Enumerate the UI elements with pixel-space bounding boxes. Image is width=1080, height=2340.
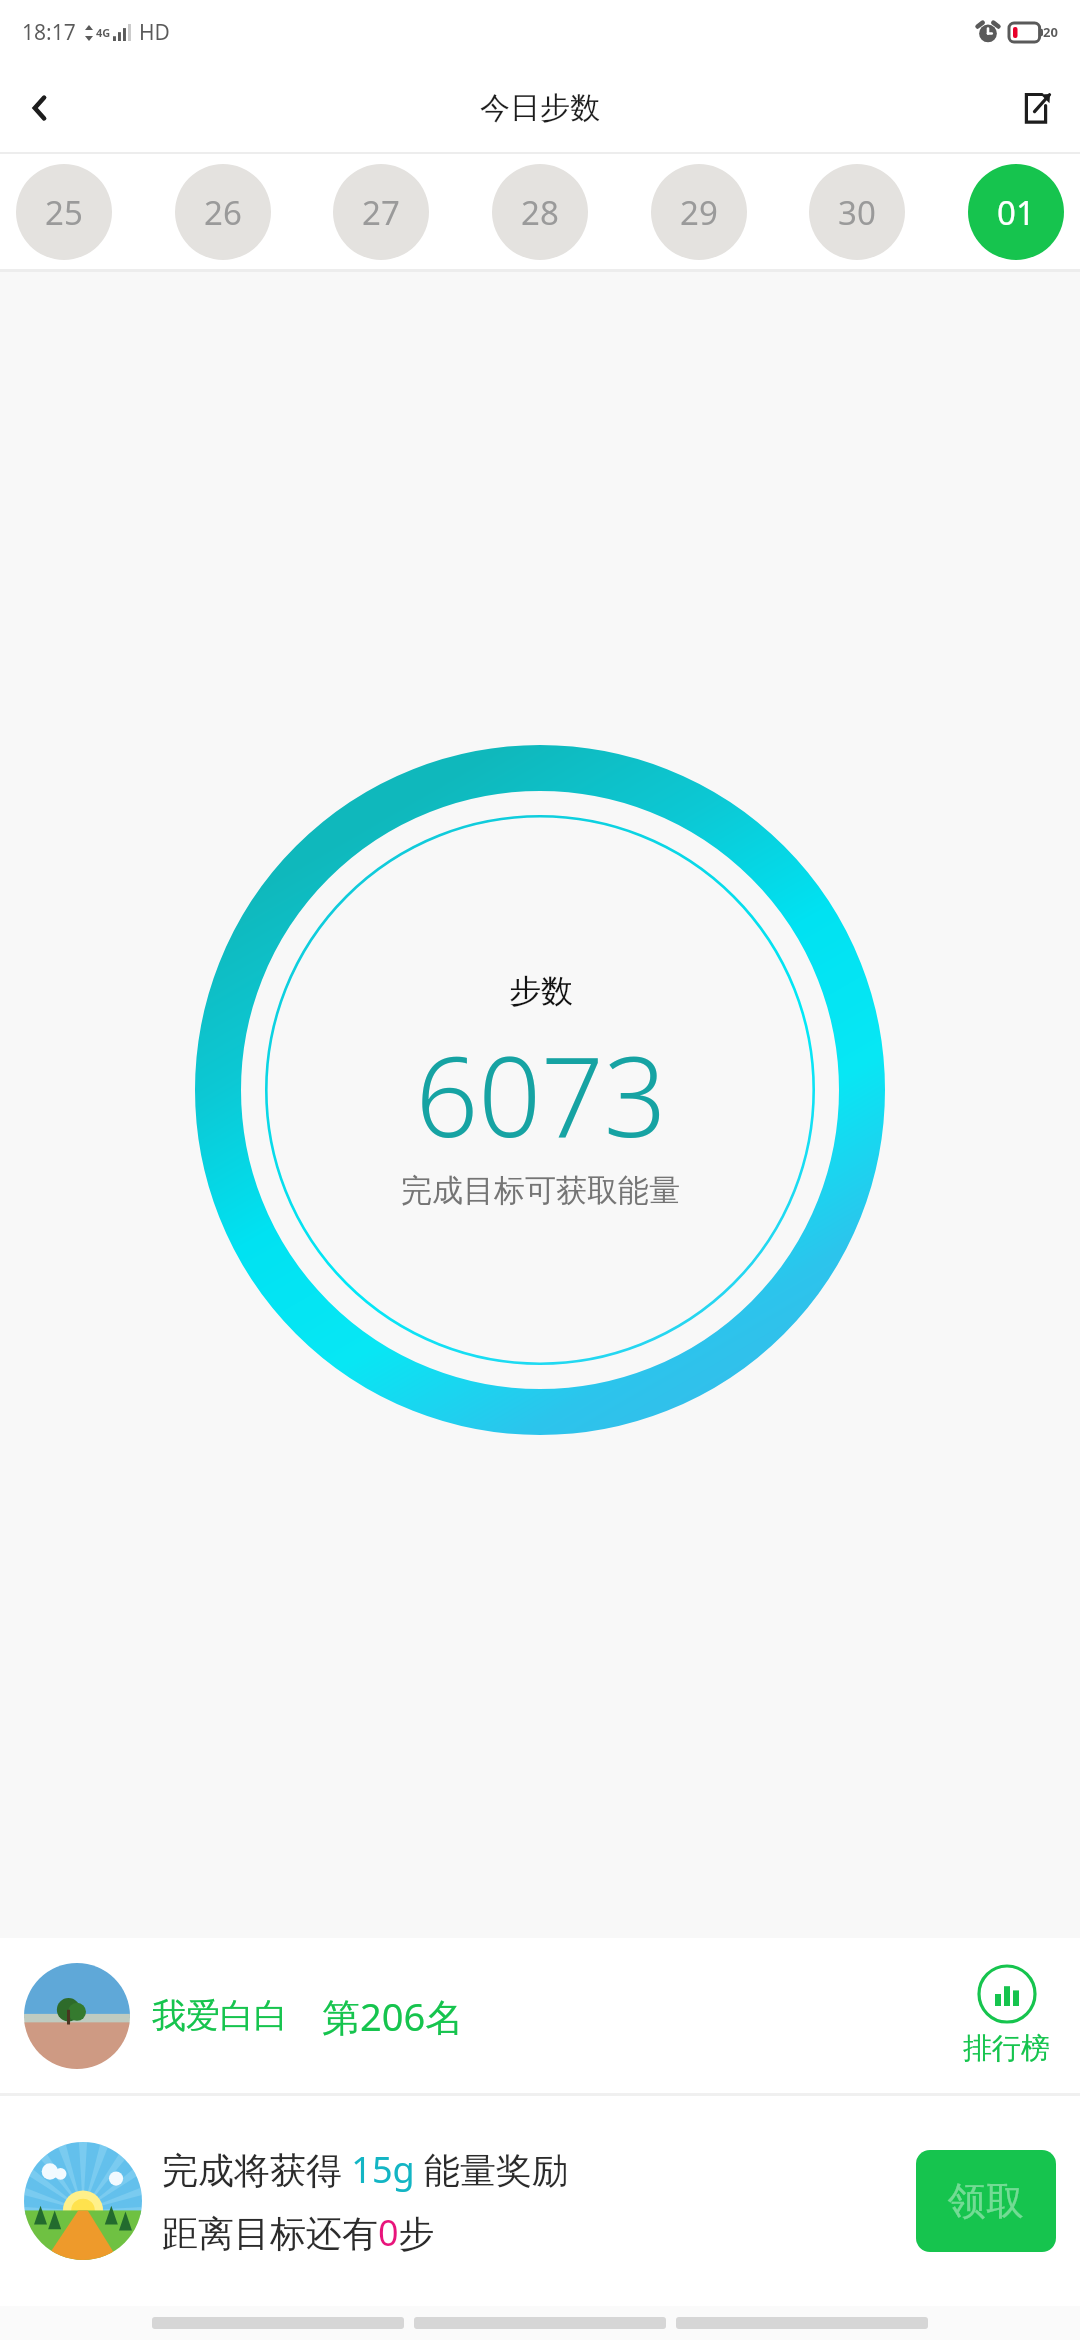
button[interactable]: 26 <box>175 164 271 260</box>
button[interactable]: 25 <box>16 164 112 260</box>
staticText: 领取 <box>948 2177 1024 2225</box>
staticText: 完成目标可获取能量 <box>401 1171 680 1210</box>
staticText: 28 <box>521 190 559 235</box>
staticText: 29 <box>680 190 718 235</box>
button[interactable]: 01 <box>968 164 1064 260</box>
staticText: 排行榜 <box>963 2030 1050 2067</box>
staticText: 第206名 <box>322 1990 464 2042</box>
button[interactable]: 28 <box>492 164 588 260</box>
staticText: 01 <box>997 190 1035 235</box>
button[interactable]: 排行榜 <box>957 1964 1056 2067</box>
staticText: 26 <box>204 190 242 235</box>
staticText: 20 <box>1043 23 1058 41</box>
staticText: 4G <box>96 25 111 40</box>
button[interactable]: 29 <box>651 164 747 260</box>
staticText: 18:17 <box>22 18 76 47</box>
staticText: 6073 <box>415 1019 667 1169</box>
button[interactable]: Back <box>10 78 70 138</box>
staticText: 距离目标还有0步 <box>162 2208 435 2257</box>
staticText: 我爱白白 <box>152 1994 288 2037</box>
staticText: 完成将获得 15g 能量奖励 <box>162 2145 569 2194</box>
button[interactable]: Share <box>1006 78 1066 138</box>
staticText: 今日步数 <box>480 89 600 127</box>
button[interactable]: 27 <box>333 164 429 260</box>
button[interactable]: 我爱白白 <box>0 1938 1080 2093</box>
staticText: 步数 <box>509 971 573 1011</box>
button[interactable]: 领取 <box>916 2150 1056 2252</box>
button[interactable]: 30 <box>809 164 905 260</box>
staticText: 27 <box>362 190 400 235</box>
staticText: 25 <box>45 190 83 235</box>
staticText: 30 <box>838 190 876 235</box>
staticText: HD <box>139 18 170 47</box>
